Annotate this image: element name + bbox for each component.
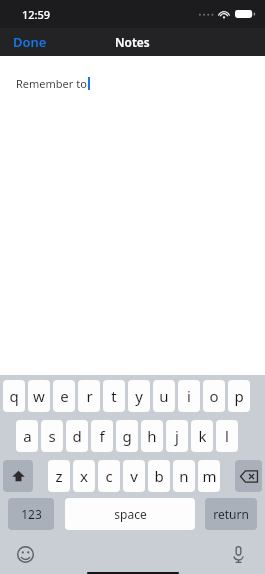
button[interactable]: q [3, 380, 25, 412]
button[interactable]: Delete [235, 460, 262, 492]
button[interactable]: l [216, 420, 238, 452]
button[interactable]: h [141, 420, 163, 452]
staticText: x [80, 466, 88, 486]
button[interactable]: r [78, 380, 100, 412]
button[interactable]: s [41, 420, 63, 452]
staticText: v [130, 466, 138, 486]
button[interactable]: space [65, 498, 195, 530]
staticText: i [187, 386, 191, 406]
staticText: a [23, 426, 32, 446]
staticText: 12:59 [22, 7, 51, 22]
button[interactable]: Done [0, 28, 57, 56]
button[interactable]: b [148, 460, 170, 492]
button[interactable]: z [48, 460, 70, 492]
button[interactable]: v [123, 460, 145, 492]
staticText: return [213, 506, 249, 522]
staticText: y [135, 386, 143, 406]
button[interactable]: t [103, 380, 125, 412]
button[interactable]: Dictate [225, 541, 251, 567]
staticText: g [122, 426, 132, 446]
staticText: p [234, 386, 244, 406]
staticText: k [198, 426, 207, 446]
button[interactable]: k [191, 420, 213, 452]
staticText: Remember to [16, 76, 87, 91]
staticText: q [9, 386, 19, 406]
staticText: w [33, 386, 45, 406]
staticText: l [225, 426, 229, 446]
staticText: o [209, 386, 219, 406]
staticText: Notes [115, 34, 150, 50]
staticText: s [48, 426, 56, 446]
button[interactable]: 123 [8, 498, 54, 530]
button[interactable]: e [53, 380, 75, 412]
button[interactable]: w [28, 380, 50, 412]
button[interactable]: y [128, 380, 150, 412]
staticText: 123 [21, 506, 42, 522]
staticText: Done [13, 33, 47, 51]
button[interactable]: Shift [3, 460, 33, 492]
staticText: e [60, 386, 69, 406]
button[interactable]: d [66, 420, 88, 452]
button[interactable]: o [203, 380, 225, 412]
button[interactable]: n [173, 460, 195, 492]
button[interactable]: x [73, 460, 95, 492]
button[interactable]: return [205, 498, 257, 530]
staticText: u [159, 386, 169, 406]
staticText: d [72, 426, 82, 446]
staticText: c [105, 466, 113, 486]
staticText: space [114, 506, 147, 522]
button[interactable]: a [16, 420, 38, 452]
button[interactable]: Emoji keyboard [12, 541, 38, 567]
staticText: h [147, 426, 157, 446]
button[interactable]: c [98, 460, 120, 492]
staticText: m [202, 466, 217, 486]
button[interactable]: u [153, 380, 175, 412]
button[interactable]: g [116, 420, 138, 452]
staticText: b [154, 466, 164, 486]
staticText: t [111, 386, 117, 406]
staticText: z [55, 466, 63, 486]
button[interactable]: i [178, 380, 200, 412]
button[interactable]: m [198, 460, 220, 492]
staticText: f [99, 426, 105, 446]
button[interactable]: j [166, 420, 188, 452]
button[interactable]: p [228, 380, 250, 412]
staticText: r [86, 386, 93, 406]
staticText: j [175, 426, 179, 446]
staticText: n [179, 466, 189, 486]
button[interactable]: f [91, 420, 113, 452]
